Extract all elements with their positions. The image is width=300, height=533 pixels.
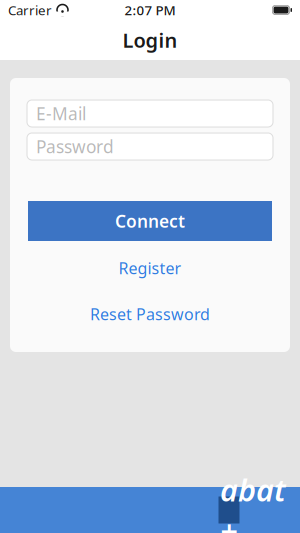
staticText: Register xyxy=(118,257,181,279)
staticText: abat+ xyxy=(220,469,286,533)
staticText: Connect xyxy=(115,209,185,232)
staticText: Password xyxy=(36,135,114,158)
staticText: 2:07 PM xyxy=(124,1,175,19)
staticText: E-Mail xyxy=(36,102,86,125)
staticText: Login xyxy=(122,27,177,53)
button[interactable]: Reset Password xyxy=(28,300,272,328)
button[interactable]: Connect xyxy=(28,201,272,241)
staticText: Carrier xyxy=(8,1,52,19)
staticText: Reset Password xyxy=(90,303,210,325)
button[interactable]: Register xyxy=(28,254,272,282)
